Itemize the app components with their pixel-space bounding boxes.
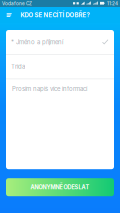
staticText: 11:24 — [107, 1, 118, 6]
staticText: ANONYMNĚ ODESLAT — [30, 184, 89, 191]
staticText: Vodafone CZ — [2, 1, 32, 6]
button[interactable]: ANONYMNĚ ODESLAT — [6, 178, 114, 196]
button[interactable]: Menu — [5, 9, 13, 20]
staticText: KDO SE NECÍTÍ DOBŘE? — [20, 11, 89, 19]
staticText: * Jméno a příjmení — [11, 38, 63, 46]
staticText: Třída — [11, 63, 25, 70]
staticText: Prosím napiš více informací — [12, 85, 87, 92]
